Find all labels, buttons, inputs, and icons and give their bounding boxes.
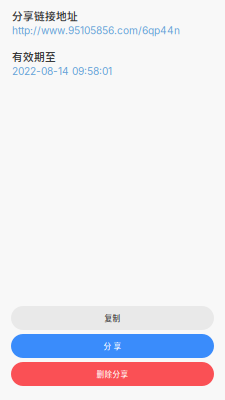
staticText: http://www.95105856.com/6qp44n (12, 24, 180, 37)
button[interactable]: 分 享 (11, 334, 214, 358)
staticText: 分 享 (103, 340, 121, 351)
button[interactable]: 复制 (11, 306, 214, 330)
staticText: 分享链接地址 (12, 8, 78, 23)
staticText: 复制 (104, 312, 120, 323)
staticText: 2022-08-14 09:58:01 (12, 65, 112, 77)
staticText: 有效期至 (12, 49, 56, 64)
staticText: 删除分享 (96, 368, 128, 379)
button[interactable]: 删除分享 (11, 362, 214, 386)
